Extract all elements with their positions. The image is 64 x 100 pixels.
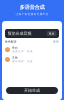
staticText: 播放 [48, 32, 54, 35]
staticText: 多语音合成 [19, 4, 44, 11]
staticText: 主角 [12, 56, 18, 59]
staticText: 角色配音 [5, 40, 17, 43]
staticText: 预览合成音频 [7, 31, 31, 36]
staticText: 开始生成 [24, 88, 40, 93]
staticText: 添加 [53, 40, 59, 43]
staticText: 旁白 [12, 46, 18, 50]
staticText: 青年男声 · 活泼 [12, 59, 33, 63]
staticText: 温柔女声 · 标准 [12, 50, 33, 53]
staticText: 让每个角色拥有专属声音 [15, 13, 48, 16]
